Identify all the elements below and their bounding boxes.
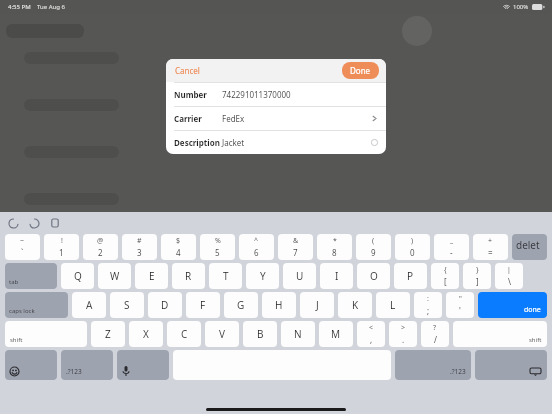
staticText: 2 bbox=[98, 247, 103, 258]
button[interactable]: Done bbox=[342, 62, 379, 79]
button[interactable]: G bbox=[224, 292, 258, 318]
button[interactable]: Z bbox=[91, 321, 125, 347]
button[interactable]: .?123 bbox=[395, 350, 471, 380]
staticText: ) bbox=[411, 236, 414, 246]
button[interactable]: ~ bbox=[5, 234, 40, 260]
staticText: + bbox=[488, 236, 493, 246]
staticText: ( bbox=[372, 236, 375, 246]
staticText: 9 bbox=[371, 247, 376, 258]
button[interactable]: : bbox=[414, 292, 442, 318]
button[interactable]: ( bbox=[356, 234, 391, 260]
button[interactable]: S bbox=[110, 292, 144, 318]
button[interactable]: U bbox=[283, 263, 316, 289]
button[interactable]: P bbox=[394, 263, 427, 289]
button[interactable]: D bbox=[148, 292, 182, 318]
button[interactable]: .?123 bbox=[61, 350, 113, 380]
button[interactable]: + bbox=[473, 234, 508, 260]
button[interactable]: T bbox=[209, 263, 242, 289]
button[interactable]: X bbox=[129, 321, 163, 347]
button[interactable]: ? bbox=[421, 321, 449, 347]
button[interactable]: Redo bbox=[29, 218, 40, 229]
button[interactable]: _ bbox=[434, 234, 469, 260]
button[interactable]: % bbox=[200, 234, 235, 260]
staticText: S bbox=[124, 298, 130, 312]
staticText: ` bbox=[21, 247, 24, 258]
button[interactable]: M bbox=[319, 321, 353, 347]
staticText: [ bbox=[444, 276, 447, 287]
button[interactable]: Carrier bbox=[166, 107, 386, 130]
button[interactable]: B bbox=[243, 321, 277, 347]
staticText: .?123 bbox=[450, 367, 466, 376]
staticText: Cancel bbox=[175, 65, 200, 76]
button[interactable]: ) bbox=[395, 234, 430, 260]
button[interactable]: F bbox=[186, 292, 220, 318]
button[interactable]: E bbox=[135, 263, 168, 289]
staticText: $ bbox=[176, 236, 181, 246]
button[interactable]: tab bbox=[5, 263, 57, 289]
staticText: ' bbox=[459, 305, 461, 316]
staticText: shift bbox=[529, 336, 542, 344]
button[interactable]: J bbox=[300, 292, 334, 318]
button[interactable]: } bbox=[463, 263, 491, 289]
button[interactable]: Emoji bbox=[5, 350, 57, 380]
staticText: O bbox=[370, 269, 378, 283]
staticText: > bbox=[401, 323, 406, 333]
staticText: .?123 bbox=[66, 367, 82, 376]
button[interactable]: Dictation bbox=[117, 350, 169, 380]
button[interactable]: A bbox=[72, 292, 106, 318]
button[interactable]: I bbox=[320, 263, 353, 289]
button[interactable]: ^ bbox=[239, 234, 274, 260]
button[interactable]: | bbox=[495, 263, 523, 289]
button[interactable]: $ bbox=[161, 234, 196, 260]
button[interactable]: O bbox=[357, 263, 390, 289]
button[interactable]: C bbox=[167, 321, 201, 347]
button[interactable]: { bbox=[431, 263, 459, 289]
staticText: P bbox=[407, 269, 414, 283]
staticText: & bbox=[293, 236, 299, 246]
staticText: 8 bbox=[332, 247, 337, 258]
button[interactable]: shift bbox=[453, 321, 547, 347]
button[interactable]: < bbox=[357, 321, 385, 347]
staticText: M bbox=[331, 327, 341, 341]
button[interactable]: R bbox=[172, 263, 205, 289]
button[interactable]: H bbox=[262, 292, 296, 318]
button[interactable]: Paste bbox=[50, 218, 60, 228]
button[interactable]: shift bbox=[5, 321, 87, 347]
button[interactable]: Hide keyboard bbox=[475, 350, 547, 380]
button[interactable]: Description bbox=[166, 131, 386, 154]
button[interactable]: " bbox=[446, 292, 474, 318]
staticText: caps lock bbox=[9, 307, 35, 315]
button[interactable]: ! bbox=[44, 234, 79, 260]
button[interactable]: Q bbox=[61, 263, 94, 289]
other: Clear description bbox=[371, 139, 378, 146]
staticText: 7 bbox=[293, 247, 298, 258]
button[interactable]: W bbox=[98, 263, 131, 289]
staticText: 4:55 PM bbox=[8, 3, 31, 11]
staticText: U bbox=[296, 269, 304, 283]
button[interactable]: @ bbox=[83, 234, 118, 260]
staticText: T bbox=[223, 269, 229, 283]
button[interactable]: K bbox=[338, 292, 372, 318]
button[interactable]: Cancel bbox=[173, 63, 202, 78]
button[interactable]: L bbox=[376, 292, 410, 318]
button[interactable]: Undo bbox=[8, 218, 19, 229]
button[interactable]: done bbox=[478, 292, 547, 318]
staticText: 1 bbox=[59, 247, 64, 258]
staticText: B bbox=[257, 327, 264, 341]
button[interactable]: * bbox=[317, 234, 352, 260]
staticText: : bbox=[427, 294, 429, 304]
staticText: Q bbox=[74, 269, 82, 283]
button[interactable]: > bbox=[389, 321, 417, 347]
button[interactable]: caps lock bbox=[5, 292, 68, 318]
button[interactable]: Y bbox=[246, 263, 279, 289]
button[interactable]: # bbox=[122, 234, 157, 260]
button[interactable]: delete bbox=[512, 234, 547, 260]
staticText: * bbox=[333, 236, 337, 246]
button[interactable]: N bbox=[281, 321, 315, 347]
staticText: done bbox=[524, 305, 541, 315]
staticText: F bbox=[200, 298, 206, 312]
button[interactable]: V bbox=[205, 321, 239, 347]
button[interactable]: Number bbox=[166, 83, 386, 106]
button[interactable]: & bbox=[278, 234, 313, 260]
